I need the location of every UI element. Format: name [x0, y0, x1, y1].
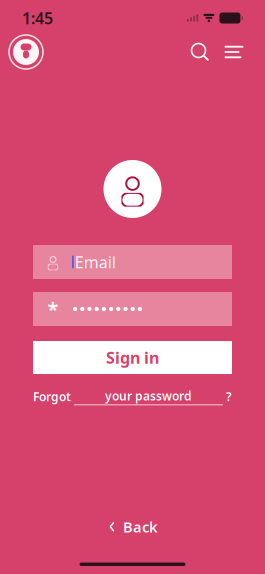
- staticText: Sign in: [106, 347, 159, 368]
- staticText: Forgot: [33, 389, 71, 404]
- staticText: Email: [75, 251, 116, 273]
- staticText: your password: [105, 388, 192, 404]
- button[interactable]: Menu: [217, 35, 251, 69]
- staticText: 1:45: [22, 7, 53, 29]
- staticText: Back: [123, 517, 158, 536]
- button[interactable]: Email: [33, 245, 232, 279]
- button[interactable]: Forgot: [33, 388, 232, 405]
- staticText: ?: [226, 389, 232, 404]
- button[interactable]: Search: [183, 35, 217, 69]
- button[interactable]: Back: [103, 511, 162, 542]
- button[interactable]: Home: [8, 30, 44, 74]
- button[interactable]: Sign in: [33, 341, 232, 374]
- staticText: *: [47, 296, 58, 322]
- button[interactable]: *: [33, 292, 232, 326]
